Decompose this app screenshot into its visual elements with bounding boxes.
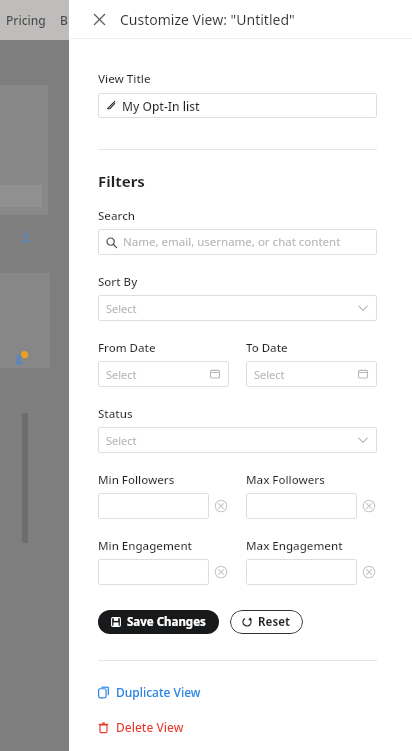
button[interactable]: Clear <box>213 498 229 514</box>
staticText: Save Changes <box>127 614 206 630</box>
staticText: Select <box>106 433 137 448</box>
staticText: My Opt-In list <box>122 98 200 114</box>
button[interactable]: Close <box>87 7 111 31</box>
button[interactable]: Clear <box>361 498 377 514</box>
staticText: From Date <box>98 340 156 356</box>
staticText: Status <box>98 406 133 422</box>
staticText: Search <box>98 208 135 224</box>
button[interactable]: Select <box>246 361 377 387</box>
button[interactable]: Delete View <box>98 717 184 737</box>
staticText: Min Engagement <box>98 538 193 554</box>
staticText: Select <box>106 301 137 316</box>
staticText: Min Followers <box>98 472 175 488</box>
button[interactable] <box>98 559 209 585</box>
button[interactable]: Select <box>98 361 229 387</box>
staticText: To Date <box>246 340 288 356</box>
button[interactable]: Clear <box>361 564 377 580</box>
staticText: Pricing <box>6 12 46 28</box>
staticText: B <box>60 12 68 28</box>
button[interactable] <box>246 559 357 585</box>
staticText: Filters <box>98 171 145 191</box>
button[interactable]: Save Changes <box>98 610 219 634</box>
staticText: Name, email, username, or chat content <box>123 234 341 250</box>
staticText: Select <box>106 367 137 382</box>
staticText: Delete View <box>116 719 184 735</box>
button[interactable] <box>98 493 209 519</box>
button[interactable]: My Opt-In list <box>98 93 377 118</box>
button[interactable]: Reset <box>230 610 303 634</box>
staticText: Max Engagement <box>246 538 343 554</box>
button[interactable]: Clear <box>213 564 229 580</box>
staticText: Customize View: "Untitled" <box>120 10 295 29</box>
staticText: Duplicate View <box>116 684 201 700</box>
staticText: Max Followers <box>246 472 325 488</box>
button[interactable]: Select <box>98 427 377 453</box>
button[interactable] <box>246 493 357 519</box>
staticText: Reset <box>258 614 291 630</box>
button[interactable]: Duplicate View <box>98 682 201 702</box>
staticText: View Title <box>98 71 151 87</box>
staticText: Select <box>254 367 285 382</box>
staticText: Sort By <box>98 274 138 290</box>
button[interactable]: Name, email, username, or chat content <box>98 229 377 255</box>
button[interactable]: Select <box>98 295 377 321</box>
